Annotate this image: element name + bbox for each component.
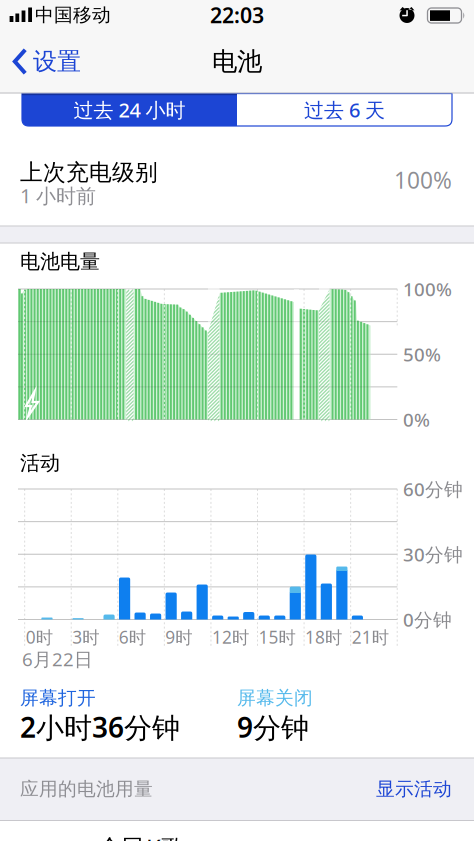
staticText: 应用的电池用量 [20, 777, 153, 800]
staticText: 电池 [212, 46, 262, 77]
staticText: 过去 6 天 [304, 96, 385, 123]
staticText: 2小时36分钟 [20, 708, 180, 746]
staticText: 100% [403, 277, 452, 301]
staticText: 1 小时前 [20, 182, 96, 209]
staticText: 屏幕打开 [20, 686, 96, 709]
staticText: 过去 24 小时 [73, 96, 185, 123]
staticText: 设置 [33, 47, 81, 76]
staticText: 12时 [212, 625, 249, 648]
staticText: 3时 [72, 625, 99, 648]
staticText: 9时 [165, 625, 192, 648]
staticText: 中国移动 [35, 3, 111, 26]
staticText: 6时 [119, 625, 146, 648]
staticText: 上次充电级别 [20, 159, 158, 186]
button[interactable]: 全民K歌 电池用量 [98, 834, 208, 841]
button[interactable]: 过去 24 小时 [22, 93, 237, 126]
staticText: 0% [403, 407, 430, 432]
staticText: 22:03 [210, 1, 264, 29]
button[interactable]: 返回设置 [13, 39, 103, 83]
staticText: 21时 [352, 625, 389, 648]
staticText: 50% [403, 342, 441, 367]
staticText: 15时 [258, 625, 295, 648]
staticText: 30分钟 [403, 542, 463, 567]
staticText: 电池电量 [20, 249, 100, 274]
staticText: 全民K歌 [98, 832, 185, 841]
staticText: 活动 [20, 451, 60, 475]
staticText: 100% [394, 165, 452, 195]
staticText: 18时 [305, 625, 342, 648]
staticText: 0分钟 [403, 607, 452, 632]
button[interactable]: 显示活动 [342, 774, 452, 804]
staticText: 6月22日 [22, 647, 93, 671]
staticText: 60分钟 [403, 477, 463, 501]
staticText: 屏幕关闭 [237, 686, 313, 709]
button[interactable]: 过去 6 天 [237, 93, 452, 126]
staticText: 0时 [26, 625, 53, 648]
staticText: 9分钟 [237, 708, 309, 746]
staticText: 显示活动 [376, 777, 452, 800]
